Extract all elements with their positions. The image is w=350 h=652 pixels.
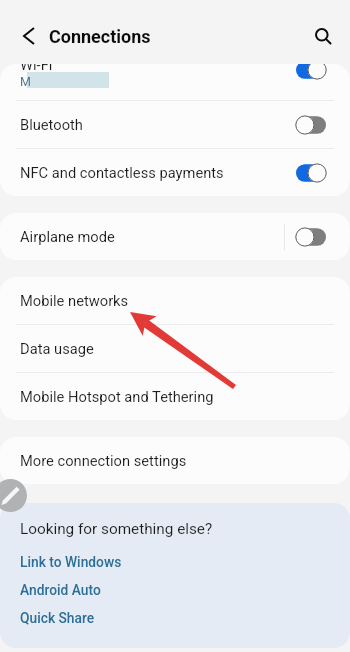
staticText: Airplane mode: [20, 228, 284, 245]
staticText: Looking for something else?: [20, 520, 213, 538]
button[interactable]: Bluetooth: [0, 101, 350, 148]
staticText: Wi-Fi: [20, 64, 53, 73]
staticText: More connection settings: [20, 452, 350, 469]
button[interactable]: Data usage: [0, 325, 350, 372]
staticText: Mobile networks: [20, 292, 350, 309]
button[interactable]: Edit: [0, 479, 27, 512]
staticText: Connections: [49, 26, 151, 47]
staticText: NFC and contactless payments: [20, 164, 296, 181]
staticText: Data usage: [20, 340, 350, 357]
button[interactable]: Mobile networks: [0, 277, 350, 324]
button[interactable]: Search: [298, 13, 342, 51]
button[interactable]: Quick Share: [20, 610, 95, 626]
staticText: M: [20, 74, 31, 89]
staticText: Bluetooth: [20, 116, 296, 133]
button[interactable]: Airplane mode: [0, 213, 350, 260]
button[interactable]: Navigate up: [3, 13, 51, 51]
button[interactable]: Mobile Hotspot and Tethering: [0, 373, 350, 420]
button[interactable]: Link to Windows: [20, 554, 122, 570]
button[interactable]: More connection settings: [0, 437, 350, 484]
button[interactable]: Wi-Fi: [0, 64, 350, 100]
button[interactable]: NFC and contactless payments: [0, 149, 350, 196]
staticText: Mobile Hotspot and Tethering: [20, 388, 350, 405]
button[interactable]: Android Auto: [20, 582, 101, 598]
